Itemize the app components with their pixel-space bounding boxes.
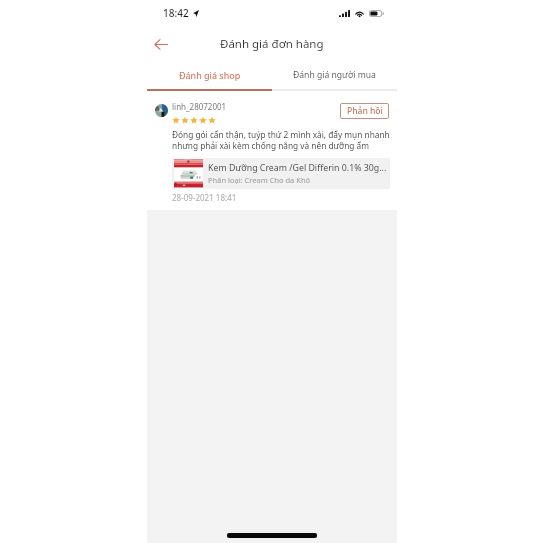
- button[interactable]: Phản hồi: [340, 103, 389, 119]
- button[interactable]: Kem Dưỡng Cream /Gel Differin 0.1% 30g..…: [172, 158, 390, 189]
- button[interactable]: Back: [150, 33, 172, 55]
- staticText: Đóng gói cẩn thận, tuýp thứ 2 mình xài, …: [172, 129, 394, 151]
- staticText: Phân loại: Cream Cho da Khô: [208, 175, 311, 185]
- staticText: Kem Dưỡng Cream /Gel Differin 0.1% 30g..…: [208, 162, 387, 174]
- staticText: Đánh giá người mua: [293, 69, 376, 81]
- button[interactable]: Đánh giá shop: [147, 60, 272, 89]
- staticText: Phản hồi: [347, 105, 383, 117]
- staticText: 18:42: [163, 6, 189, 20]
- staticText: 28-09-2021 18:41: [172, 192, 237, 203]
- button[interactable]: Đánh giá người mua: [272, 60, 397, 89]
- staticText: Đánh giá đơn hàng: [220, 36, 324, 52]
- staticText: linh_28072001: [172, 101, 227, 112]
- staticText: Đánh giá shop: [179, 69, 241, 81]
